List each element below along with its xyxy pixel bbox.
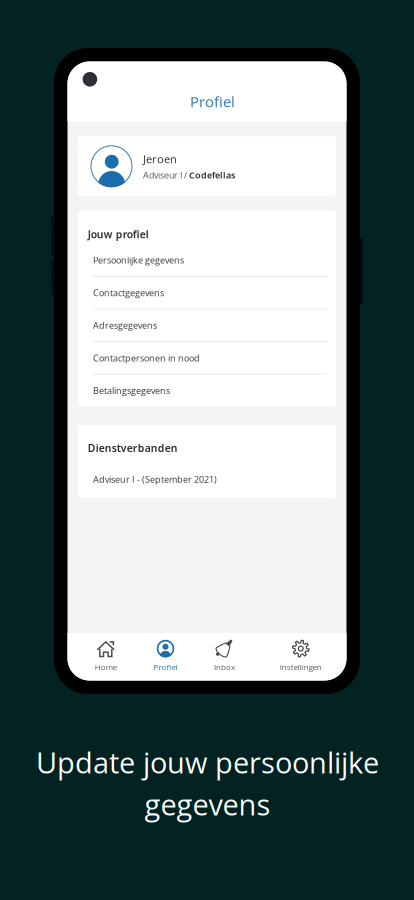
button[interactable]: Home [95, 637, 117, 675]
staticText: Persoonlijke gegevens [93, 254, 184, 266]
staticText: Adresgegevens [93, 319, 157, 331]
staticText: Contactgegevens [93, 287, 164, 299]
staticText: Jouw profiel [88, 227, 149, 241]
button[interactable]: Persoonlijke gegevens [78, 244, 336, 276]
button[interactable]: Adresgegevens [78, 309, 336, 341]
button[interactable]: Betalingsgegevens [78, 375, 336, 406]
staticText: gegevens [144, 785, 270, 824]
staticText: Codefellas [189, 169, 235, 181]
staticText: Jeroen [143, 151, 177, 166]
staticText: Profiel [153, 661, 177, 672]
button[interactable]: Contactgegevens [78, 277, 336, 309]
staticText: Inbox [214, 661, 235, 672]
staticText: Adviseur I / [143, 169, 189, 181]
staticText: Profiel [190, 91, 235, 111]
staticText: Update jouw persoonlijke [36, 743, 379, 782]
staticText: Contactpersonen in nood [93, 352, 200, 364]
button[interactable]: Profiel [153, 637, 177, 675]
staticText: Adviseur I - (September 2021) [93, 473, 217, 485]
button[interactable]: Adviseur I - (September 2021) [78, 463, 336, 495]
staticText: Home [95, 661, 117, 672]
button[interactable]: Instellingen [280, 637, 322, 675]
button[interactable]: Inbox [214, 637, 235, 675]
staticText: Betalingsgegevens [93, 384, 170, 397]
staticText: Dienstverbanden [88, 441, 178, 455]
staticText: Instellingen [280, 661, 322, 672]
button[interactable]: Contactpersonen in nood [78, 342, 336, 374]
